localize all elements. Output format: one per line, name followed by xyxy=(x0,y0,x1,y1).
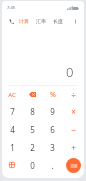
staticText: AC xyxy=(8,91,16,99)
staticText: × xyxy=(71,106,76,117)
button[interactable]: 9 xyxy=(42,103,63,120)
button[interactable]: 2 xyxy=(22,138,42,156)
staticText: 计算 xyxy=(19,18,29,24)
button[interactable]: × xyxy=(63,103,84,120)
button[interactable]: + xyxy=(63,138,84,156)
staticText: 长度 xyxy=(53,18,63,24)
staticText: 7 xyxy=(10,106,15,117)
staticText: 1 xyxy=(10,142,15,153)
staticText: . xyxy=(51,160,54,171)
button[interactable]: 汇率 xyxy=(35,16,47,26)
staticText: ÷ xyxy=(71,89,76,100)
staticText: 4 xyxy=(10,124,15,135)
staticText: 9 xyxy=(50,106,55,117)
staticText: 汇率 xyxy=(36,18,46,24)
button[interactable]: 8 xyxy=(22,103,42,120)
button[interactable]: AC xyxy=(2,86,22,103)
staticText: − xyxy=(71,124,76,135)
button[interactable]: % xyxy=(42,86,63,103)
button[interactable]: 计算 xyxy=(18,16,30,26)
staticText: 0 xyxy=(30,160,35,171)
button[interactable]: History xyxy=(2,156,22,174)
button[interactable]: 0 xyxy=(22,156,42,174)
staticText: 5 xyxy=(30,124,35,135)
staticText: 7:45 xyxy=(7,5,15,10)
button[interactable]: 5 xyxy=(22,120,42,138)
button[interactable]: More options xyxy=(71,17,80,26)
button[interactable]: 6 xyxy=(42,120,63,138)
button[interactable]: 7 xyxy=(2,103,22,120)
staticText: 8 xyxy=(30,106,35,117)
button[interactable]: Equals xyxy=(66,158,81,173)
button[interactable]: Delete xyxy=(22,86,42,103)
staticText: 0 xyxy=(66,63,74,81)
staticText: 2 xyxy=(30,142,35,153)
staticText: 6 xyxy=(50,124,55,135)
button[interactable]: Calculator xyxy=(6,16,16,26)
button[interactable]: ÷ xyxy=(63,86,84,103)
button[interactable]: 长度 xyxy=(52,16,64,26)
staticText: % xyxy=(50,90,56,100)
button[interactable]: − xyxy=(63,120,84,138)
button[interactable]: 3 xyxy=(42,138,63,156)
button[interactable]: 4 xyxy=(2,120,22,138)
button[interactable]: 1 xyxy=(2,138,22,156)
button[interactable]: . xyxy=(42,156,63,174)
staticText: 3 xyxy=(50,142,55,153)
staticText: + xyxy=(71,142,76,153)
